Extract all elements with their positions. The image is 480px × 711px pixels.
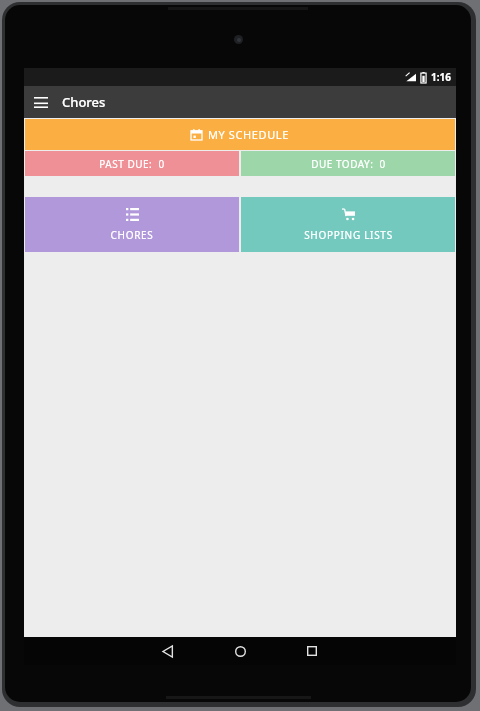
staticText: DUE TODAY: 0 — [311, 157, 386, 171]
button[interactable]: Back — [145, 637, 191, 665]
button[interactable]: PAST DUE: 0 — [25, 151, 239, 176]
staticText: 1:16 — [431, 70, 451, 84]
button[interactable]: Recent apps — [289, 637, 335, 665]
button[interactable]: Home — [217, 637, 263, 665]
staticText: Chores — [62, 93, 106, 111]
button[interactable]: Open navigation drawer — [24, 86, 58, 118]
button[interactable]: SHOPPING LISTS — [241, 197, 455, 252]
button[interactable]: DUE TODAY: 0 — [241, 151, 455, 176]
staticText: MY SCHEDULE — [208, 127, 289, 142]
staticText: PAST DUE: 0 — [99, 157, 165, 171]
button[interactable]: CHORES — [25, 197, 239, 252]
button[interactable]: MY SCHEDULE — [25, 119, 455, 150]
staticText: CHORES — [110, 228, 154, 242]
staticText: SHOPPING LISTS — [304, 228, 393, 242]
